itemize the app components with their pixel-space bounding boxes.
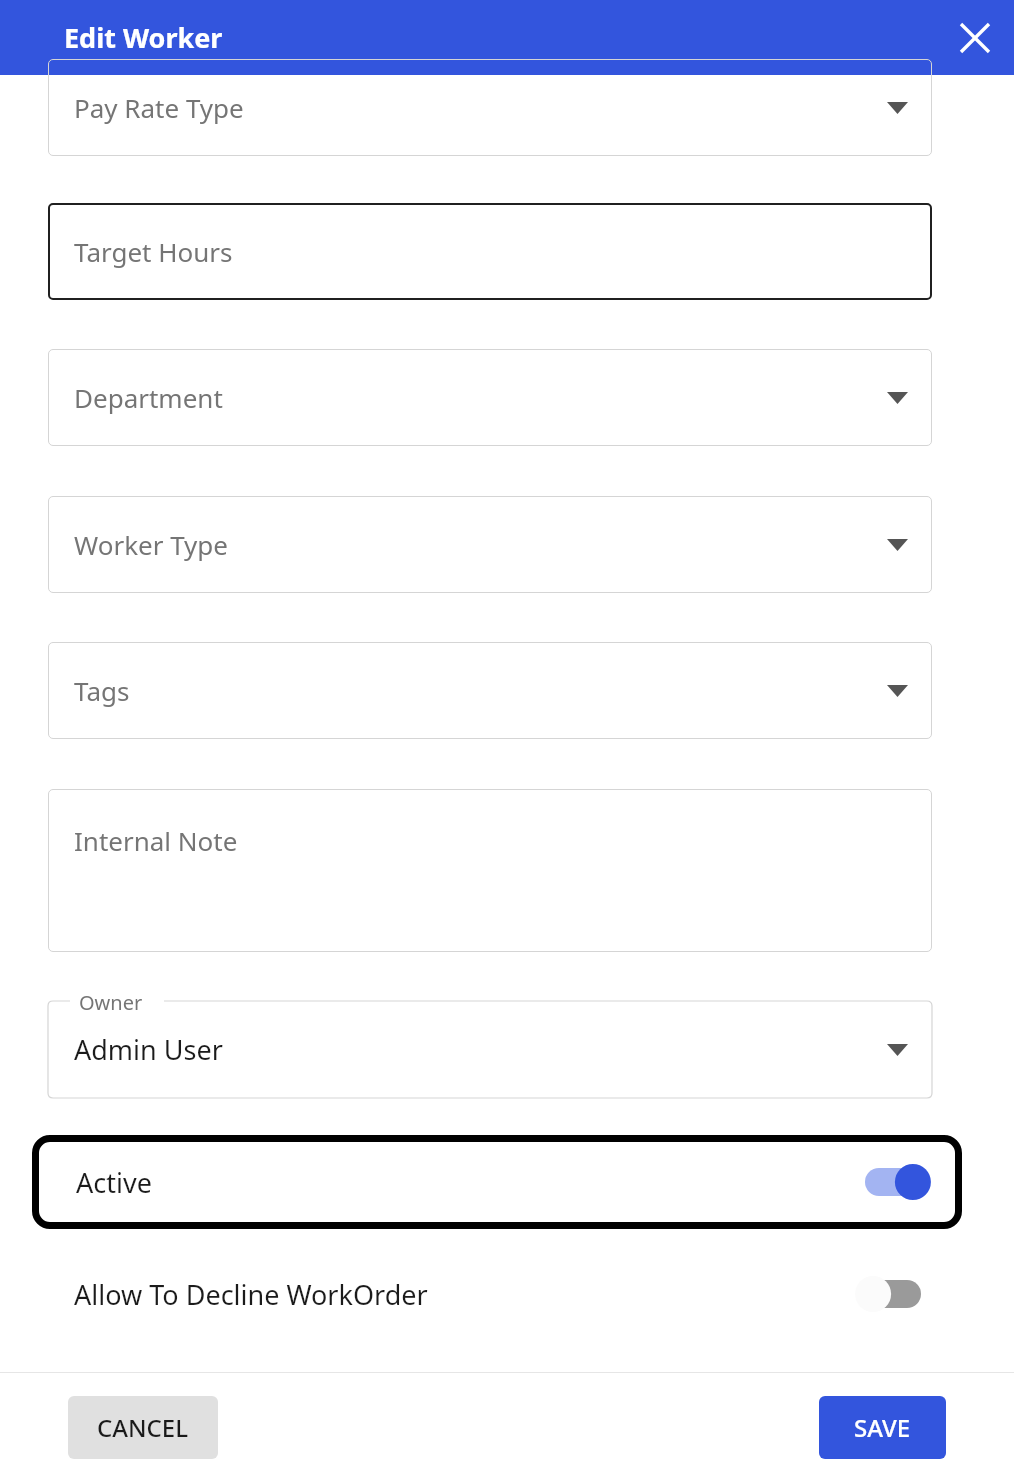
staticText: Allow To Decline WorkOrder — [74, 1276, 428, 1313]
button[interactable]: CANCEL — [68, 1396, 218, 1459]
button[interactable]: Tags — [48, 642, 932, 739]
staticText: Admin User — [74, 1031, 223, 1068]
staticText: Active — [76, 1164, 152, 1201]
button[interactable]: Target Hours — [48, 203, 932, 300]
button[interactable]: Department — [48, 349, 932, 446]
staticText: CANCEL — [97, 1411, 189, 1444]
button[interactable]: Pay Rate Type — [48, 59, 932, 156]
button[interactable]: Active — [32, 1135, 962, 1229]
button[interactable]: Worker Type — [48, 496, 932, 593]
button[interactable]: Close — [942, 5, 1008, 71]
staticText: Edit Worker — [64, 19, 223, 56]
staticText: Pay Rate Type — [74, 90, 244, 125]
staticText: Internal Note — [74, 823, 238, 858]
staticText: Tags — [74, 673, 130, 708]
staticText: SAVE — [854, 1411, 911, 1444]
staticText: Department — [74, 380, 223, 415]
button[interactable]: Internal Note — [48, 789, 932, 952]
button[interactable]: SAVE — [819, 1396, 946, 1459]
staticText: Worker Type — [74, 527, 229, 562]
button[interactable]: Owner — [48, 1001, 932, 1098]
staticText: Owner — [79, 989, 143, 1016]
staticText: Target Hours — [74, 234, 233, 269]
button[interactable]: Allow To Decline WorkOrder — [48, 1252, 932, 1336]
